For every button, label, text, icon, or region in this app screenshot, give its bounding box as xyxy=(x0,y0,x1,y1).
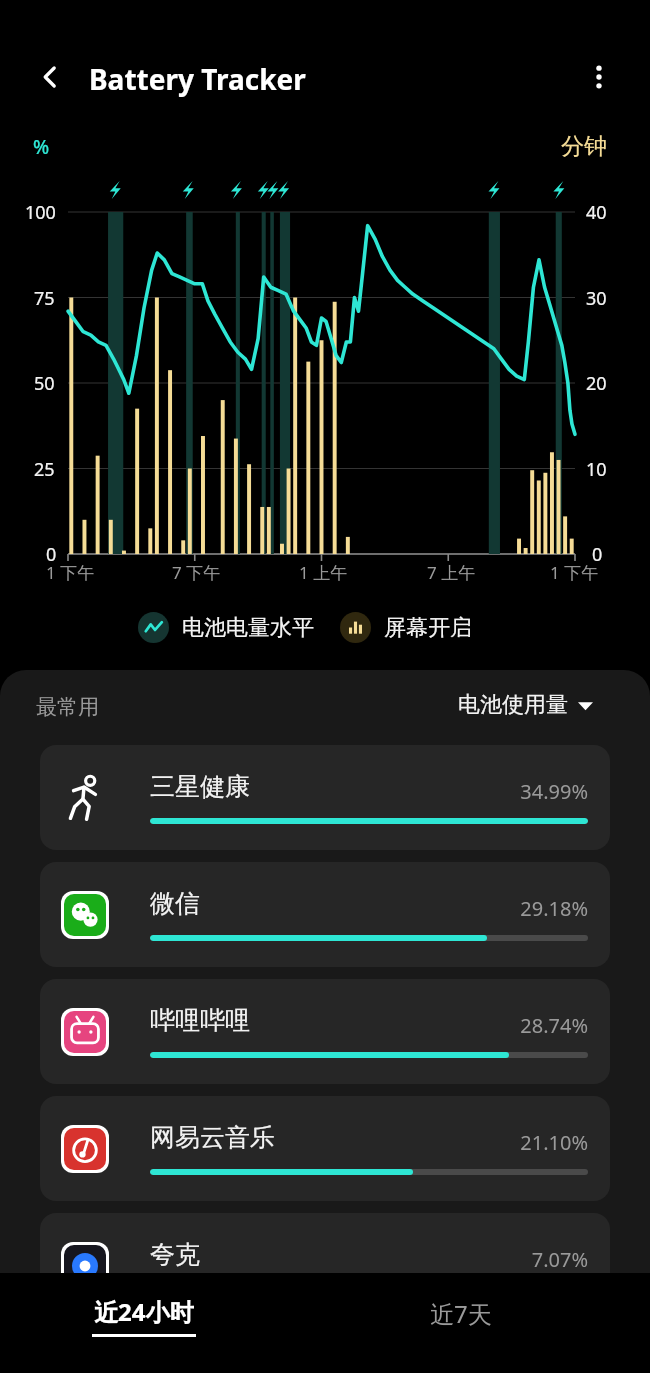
staticText: 1 下午 xyxy=(550,561,599,584)
staticText: 分钟 xyxy=(561,132,607,161)
button[interactable]: 三星健康 xyxy=(40,745,610,850)
button[interactable]: 网易云音乐 xyxy=(40,1096,610,1201)
staticText: 21.10% xyxy=(470,1129,588,1156)
staticText: 电池使用量 xyxy=(458,691,568,719)
button[interactable]: 近24小时 xyxy=(92,1295,196,1337)
staticText: 100 xyxy=(25,200,56,225)
staticText: 28.74% xyxy=(470,1012,588,1039)
staticText: 电池电量水平 xyxy=(182,614,314,642)
button[interactable]: More options xyxy=(573,51,625,103)
staticText: 30 xyxy=(586,286,607,311)
staticText: 50 xyxy=(34,371,55,396)
staticText: 20 xyxy=(586,371,607,396)
staticText: 近24小时 xyxy=(94,1295,194,1328)
staticText: 25 xyxy=(34,457,55,482)
staticText: 哔哩哔哩 xyxy=(150,1005,250,1036)
staticText: 屏幕开启 xyxy=(384,614,472,642)
button[interactable]: 夸克 xyxy=(40,1213,610,1273)
staticText: 10 xyxy=(586,457,607,482)
staticText: 近7天 xyxy=(430,1297,492,1330)
button[interactable]: 哔哩哔哩 xyxy=(40,979,610,1084)
button[interactable]: 屏幕开启 xyxy=(340,612,472,643)
staticText: % xyxy=(33,134,50,160)
staticText: 三星健康 xyxy=(150,771,250,802)
staticText: 0 xyxy=(592,542,603,567)
staticText: 7 上午 xyxy=(427,561,476,584)
button[interactable]: 电池电量水平 xyxy=(138,612,314,643)
staticText: 最常用 xyxy=(36,694,99,720)
staticText: 7 下午 xyxy=(172,561,221,584)
staticText: Battery Tracker xyxy=(89,60,306,98)
staticText: 75 xyxy=(34,286,55,311)
staticText: 网易云音乐 xyxy=(150,1122,275,1153)
button[interactable]: Back xyxy=(24,51,76,103)
button[interactable]: 近7天 xyxy=(430,1297,492,1330)
staticText: 34.99% xyxy=(470,778,588,805)
staticText: 夸克 xyxy=(150,1239,200,1270)
staticText: 29.18% xyxy=(470,895,588,922)
button[interactable]: 电池使用量 xyxy=(458,691,593,719)
button[interactable]: 微信 xyxy=(40,862,610,967)
staticText: 1 下午 xyxy=(46,561,95,584)
staticText: 1 上午 xyxy=(299,561,348,584)
staticText: 40 xyxy=(586,200,607,225)
staticText: 微信 xyxy=(150,888,200,919)
staticText: 0 xyxy=(46,542,57,567)
staticText: 7.07% xyxy=(470,1246,588,1273)
